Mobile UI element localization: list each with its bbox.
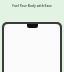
staticText: Fuel Your Body with Ease	[3, 4, 61, 8]
